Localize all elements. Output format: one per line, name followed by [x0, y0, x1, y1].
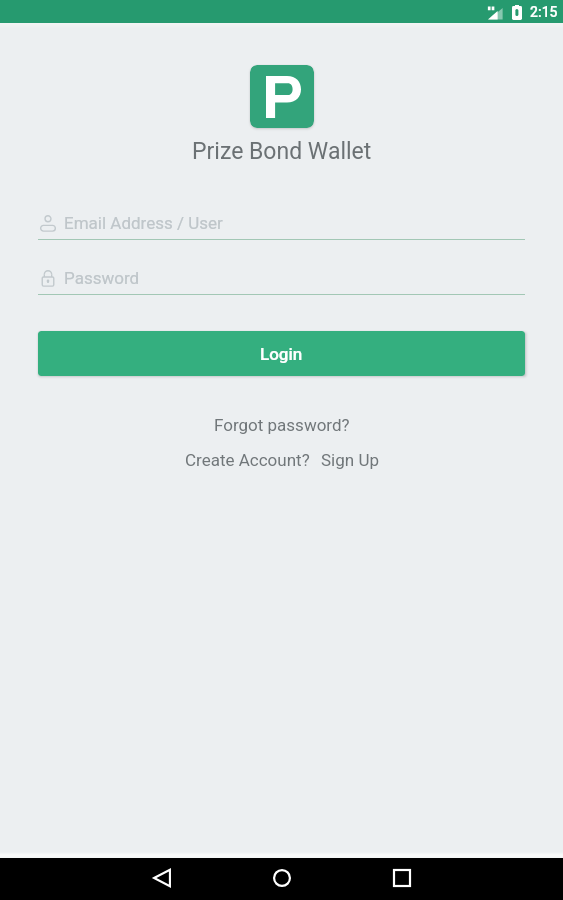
staticText: Email Address / User — [64, 213, 223, 233]
staticText: 2:15 — [530, 4, 558, 20]
button[interactable]: Home — [246, 858, 318, 897]
button[interactable]: Login — [38, 331, 525, 376]
staticText: Prize Bond Wallet — [192, 138, 372, 165]
staticText: Sign Up — [321, 450, 379, 470]
button[interactable]: Password — [38, 262, 525, 295]
button[interactable]: Sign Up — [317, 446, 383, 474]
button[interactable]: Email Address / User — [38, 207, 525, 240]
staticText: Forgot password? — [214, 415, 350, 435]
staticText: Login — [260, 344, 303, 364]
button[interactable]: Back — [126, 858, 198, 897]
staticText: Password — [64, 268, 140, 288]
staticText: Create Account? — [185, 450, 310, 470]
button[interactable]: Forgot password? — [204, 412, 360, 438]
button[interactable]: Recents — [366, 858, 438, 897]
